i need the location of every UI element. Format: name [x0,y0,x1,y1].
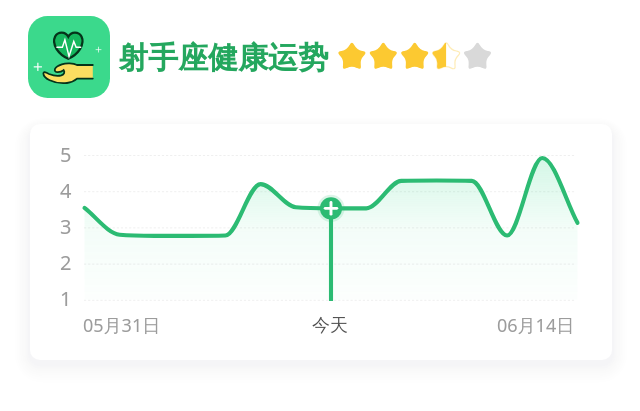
staticText: 05月31日 [83,313,161,337]
staticText: 3 [60,213,72,237]
staticText: 1 [60,285,72,309]
staticText: 5 [60,141,72,165]
staticText: 2 [60,249,72,273]
staticText: 今天 [312,314,348,337]
staticText: 4 [60,177,72,201]
staticText: 06月14日 [497,313,575,337]
staticText: 射手座健康运势 [118,39,328,77]
